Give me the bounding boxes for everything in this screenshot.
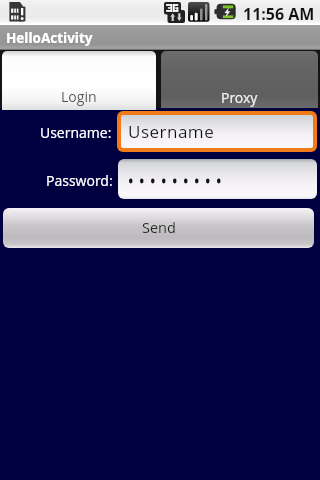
- staticText: Username:: [40, 123, 112, 142]
- button[interactable]: Proxy: [161, 51, 318, 108]
- button[interactable]: Login: [2, 51, 156, 110]
- button[interactable]: [118, 159, 317, 199]
- staticText: Send: [142, 218, 176, 238]
- staticText: 11:56 AM: [243, 3, 315, 25]
- staticText: HelloActivity: [6, 29, 93, 47]
- staticText: Username: [128, 120, 215, 143]
- staticText: Proxy: [221, 88, 258, 107]
- button[interactable]: Send: [3, 208, 314, 248]
- staticText: Login: [61, 87, 97, 106]
- button[interactable]: Username: [121, 115, 313, 148]
- staticText: Password:: [46, 171, 113, 190]
